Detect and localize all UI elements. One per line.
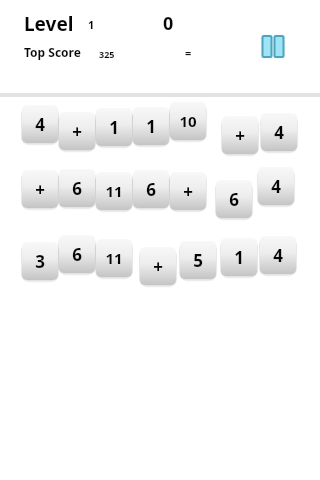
staticText: + — [153, 255, 163, 278]
staticText: + — [72, 120, 82, 143]
staticText: Top Score — [24, 44, 81, 60]
button[interactable]: 1 — [133, 107, 169, 145]
button[interactable]: 1 — [96, 108, 132, 146]
button[interactable]: 4 — [260, 236, 296, 274]
staticText: 4 — [273, 244, 283, 267]
button[interactable]: + — [59, 112, 95, 150]
staticText: 11 — [105, 181, 123, 201]
button[interactable]: + — [140, 247, 176, 285]
staticText: 6 — [229, 188, 239, 211]
staticText: Level — [24, 11, 74, 37]
button[interactable]: + — [170, 172, 206, 210]
staticText: + — [183, 180, 193, 203]
staticText: 1 — [234, 246, 244, 269]
staticText: 6 — [72, 243, 82, 266]
button[interactable]: 4 — [261, 113, 297, 151]
staticText: 11 — [105, 248, 123, 268]
button[interactable]: 4 — [258, 167, 294, 205]
staticText: 5 — [193, 249, 203, 272]
button[interactable]: 4 — [22, 105, 58, 143]
button[interactable]: + — [222, 116, 258, 154]
button[interactable]: + — [22, 170, 58, 208]
staticText: + — [35, 178, 45, 201]
staticText: 1 — [88, 17, 95, 32]
button[interactable]: 6 — [216, 180, 252, 218]
staticText: 325 — [99, 48, 115, 60]
staticText: 4 — [35, 113, 45, 136]
staticText: = — [185, 45, 192, 60]
staticText: 1 — [109, 116, 119, 139]
staticText: 10 — [179, 111, 197, 131]
button[interactable]: Pause — [258, 33, 288, 60]
button[interactable]: 11 — [96, 239, 132, 277]
button[interactable]: 6 — [59, 169, 95, 207]
button[interactable]: 5 — [180, 241, 216, 279]
staticText: 0 — [163, 11, 174, 36]
staticText: 1 — [146, 115, 156, 138]
staticText: 6 — [72, 177, 82, 200]
staticText: 4 — [271, 175, 281, 198]
button[interactable]: 6 — [59, 235, 95, 273]
button[interactable]: 1 — [221, 238, 257, 276]
staticText: 6 — [146, 178, 156, 201]
button[interactable]: 10 — [170, 102, 206, 140]
button[interactable]: 3 — [22, 242, 58, 280]
button[interactable]: 6 — [133, 170, 169, 208]
button[interactable]: 11 — [96, 172, 132, 210]
staticText: + — [235, 124, 245, 147]
staticText: 3 — [35, 250, 45, 273]
staticText: 4 — [274, 121, 284, 144]
